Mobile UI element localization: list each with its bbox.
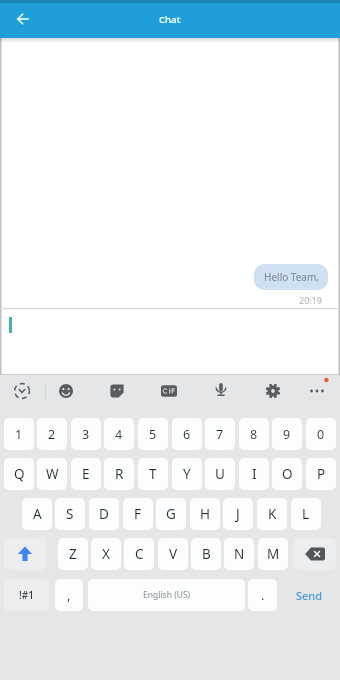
staticText: M bbox=[267, 545, 280, 563]
staticText: Y bbox=[183, 465, 191, 483]
button[interactable] bbox=[294, 538, 336, 570]
staticText: 2 bbox=[48, 426, 56, 443]
button[interactable]: B bbox=[191, 538, 221, 570]
button[interactable]: 9 bbox=[272, 418, 302, 450]
staticText: E bbox=[82, 465, 90, 483]
button[interactable] bbox=[260, 378, 286, 404]
staticText: Chat bbox=[159, 13, 181, 26]
staticText: 20:19 bbox=[299, 294, 323, 306]
button[interactable]: X bbox=[91, 538, 121, 570]
button[interactable]: U bbox=[205, 458, 235, 490]
button[interactable]: H bbox=[190, 498, 220, 530]
button[interactable]: O bbox=[272, 458, 302, 490]
button[interactable]: 5 bbox=[138, 418, 168, 450]
staticText: A bbox=[33, 505, 42, 523]
staticText: B bbox=[202, 545, 211, 563]
staticText: X bbox=[102, 545, 110, 563]
button[interactable]: E bbox=[71, 458, 101, 490]
button[interactable]: !#1 bbox=[4, 579, 49, 611]
staticText: Send bbox=[296, 588, 323, 603]
button[interactable]: . bbox=[248, 579, 277, 611]
button[interactable]: I bbox=[239, 458, 269, 490]
staticText: N bbox=[234, 545, 245, 563]
button[interactable] bbox=[4, 538, 46, 570]
staticText: !#1 bbox=[19, 588, 34, 602]
staticText: C bbox=[135, 545, 144, 563]
staticText: F bbox=[134, 505, 142, 523]
button[interactable]: Chat bbox=[159, 13, 181, 26]
button[interactable]: A bbox=[22, 498, 52, 530]
staticText: J bbox=[236, 505, 240, 523]
button[interactable]: 7 bbox=[205, 418, 235, 450]
staticText: , bbox=[67, 586, 71, 604]
button[interactable]: , bbox=[55, 579, 83, 611]
staticText: . bbox=[261, 586, 265, 604]
staticText: P bbox=[317, 465, 326, 483]
button[interactable]: T bbox=[138, 458, 168, 490]
button[interactable]: Q bbox=[4, 458, 34, 490]
button[interactable]: 4 bbox=[104, 418, 134, 450]
staticText: 8 bbox=[250, 426, 258, 443]
button[interactable] bbox=[17, 13, 29, 25]
staticText: S bbox=[66, 505, 74, 523]
button[interactable]: Z bbox=[58, 538, 88, 570]
staticText: 7 bbox=[216, 426, 224, 443]
button[interactable]: Y bbox=[172, 458, 202, 490]
button[interactable]: K bbox=[257, 498, 287, 530]
staticText: 1 bbox=[15, 426, 23, 443]
button[interactable]: 3 bbox=[71, 418, 101, 450]
button[interactable]: 1 bbox=[4, 418, 34, 450]
staticText: V bbox=[169, 545, 178, 563]
button[interactable] bbox=[53, 378, 79, 404]
staticText: 0 bbox=[317, 426, 325, 443]
button[interactable]: 2 bbox=[37, 418, 67, 450]
staticText: H bbox=[200, 505, 211, 523]
staticText: D bbox=[99, 505, 109, 523]
staticText: Z bbox=[69, 545, 77, 563]
staticText: W bbox=[46, 465, 59, 483]
button[interactable]: D bbox=[89, 498, 119, 530]
staticText: Q bbox=[14, 465, 25, 483]
staticText: G bbox=[166, 505, 176, 523]
button[interactable]: V bbox=[158, 538, 188, 570]
staticText: 9 bbox=[283, 426, 291, 443]
button[interactable]: P bbox=[306, 458, 336, 490]
staticText: 3 bbox=[82, 426, 90, 443]
staticText: L bbox=[302, 505, 310, 523]
button[interactable] bbox=[9, 378, 35, 404]
staticText: 4 bbox=[115, 426, 123, 443]
button[interactable]: S bbox=[55, 498, 85, 530]
button[interactable] bbox=[304, 378, 330, 404]
staticText: 6 bbox=[183, 426, 191, 443]
button[interactable] bbox=[104, 378, 130, 404]
staticText: O bbox=[282, 465, 293, 483]
staticText: U bbox=[215, 465, 225, 483]
button[interactable]: W bbox=[37, 458, 67, 490]
staticText: 5 bbox=[149, 426, 157, 443]
staticText: English (US) bbox=[143, 589, 191, 601]
staticText: Hello Team, bbox=[264, 270, 319, 284]
button[interactable]: English (US) bbox=[88, 579, 245, 611]
button[interactable]: Hello Team, bbox=[254, 264, 328, 290]
button[interactable]: 6 bbox=[172, 418, 202, 450]
button[interactable] bbox=[156, 378, 182, 404]
button[interactable]: N bbox=[224, 538, 254, 570]
staticText: K bbox=[268, 505, 277, 523]
button[interactable]: 8 bbox=[239, 418, 269, 450]
button[interactable]: J bbox=[223, 498, 253, 530]
staticText: I bbox=[252, 465, 257, 483]
button[interactable]: F bbox=[123, 498, 153, 530]
button[interactable] bbox=[208, 378, 234, 404]
staticText: T bbox=[149, 465, 157, 483]
button[interactable]: L bbox=[291, 498, 321, 530]
button[interactable]: M bbox=[258, 538, 288, 570]
button[interactable]: G bbox=[156, 498, 186, 530]
button[interactable]: Send bbox=[282, 579, 336, 611]
button[interactable]: 0 bbox=[306, 418, 336, 450]
button[interactable]: R bbox=[104, 458, 134, 490]
button[interactable]: C bbox=[124, 538, 154, 570]
staticText: R bbox=[115, 465, 124, 483]
